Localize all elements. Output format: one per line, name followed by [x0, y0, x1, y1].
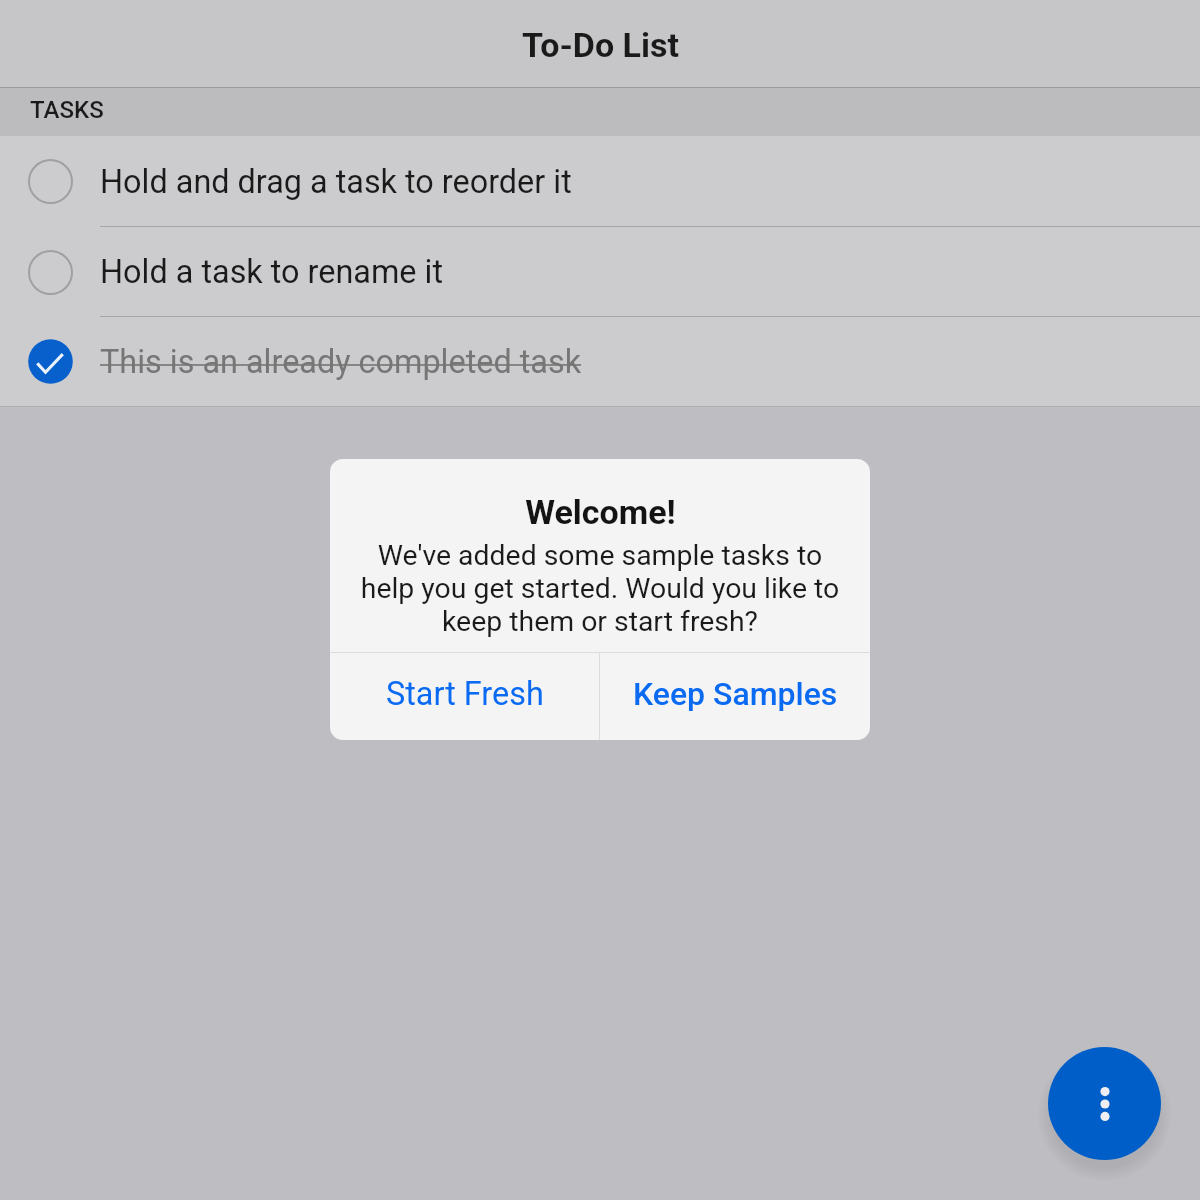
button[interactable]: Hold a task to rename it: [0, 227, 1200, 317]
staticText: We've added some sample tasks to help yo…: [358, 539, 842, 638]
staticText: Hold a task to rename it: [100, 253, 444, 291]
staticText: To-Do List: [522, 25, 679, 65]
button[interactable]: More options: [1048, 1047, 1161, 1160]
staticText: Hold and drag a task to reorder it: [100, 163, 572, 201]
staticText: Start Fresh: [386, 675, 544, 713]
staticText: TASKS: [30, 96, 104, 124]
staticText: Keep Samples: [633, 675, 838, 713]
button[interactable]: This is an already completed task: [0, 317, 1200, 406]
button[interactable]: Hold and drag a task to reorder it: [0, 136, 1200, 227]
button[interactable]: Keep Samples: [600, 653, 870, 740]
staticText: Welcome!: [525, 492, 676, 532]
staticText: This is an already completed task: [100, 343, 582, 381]
button[interactable]: Start Fresh: [330, 653, 599, 740]
